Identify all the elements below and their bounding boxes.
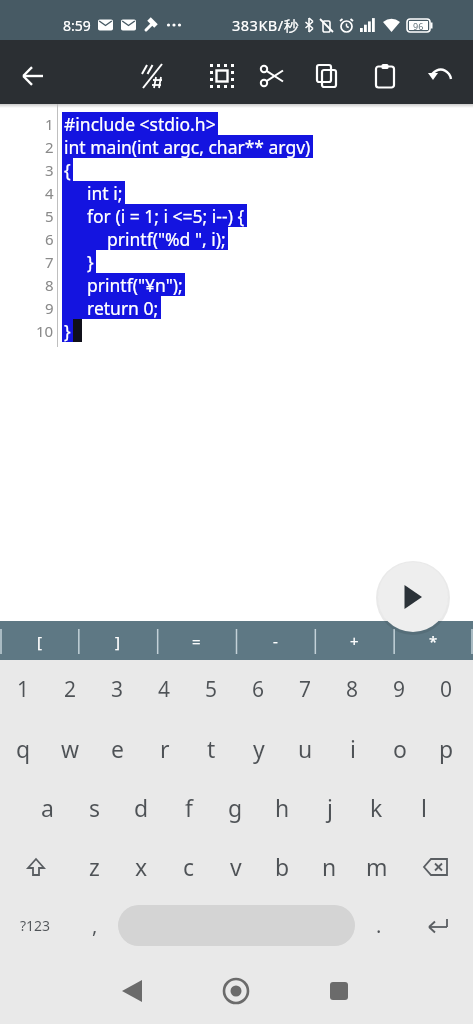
staticText: v [230,851,242,882]
staticText: ] [115,631,120,651]
button[interactable]: k [353,778,400,837]
button[interactable]: - [236,621,315,660]
button[interactable]: v [212,837,259,896]
button[interactable]: o [376,719,423,778]
button[interactable]: b [259,837,306,896]
button[interactable]: r [141,719,188,778]
staticText: 5 [45,206,54,226]
button[interactable]: ] [78,621,157,660]
button[interactable]: 4 [141,660,188,719]
staticText: return 0; [87,296,159,319]
staticText: 383KB/秒 [232,15,299,35]
staticText: 7 [299,675,312,704]
staticText: 8 [346,675,359,704]
staticText: w [61,733,80,764]
staticText: p [439,733,454,764]
button[interactable]: a [24,778,71,837]
button[interactable]: 9 [376,660,423,719]
button[interactable]: * [394,621,473,660]
button[interactable]: + [315,621,394,660]
button[interactable] [9,52,57,100]
button[interactable] [198,52,246,100]
button[interactable]: i [329,719,376,778]
button[interactable]: n [306,837,353,896]
button[interactable]: 6 [235,660,282,719]
staticText: t [207,733,216,764]
staticText: 0 [440,675,453,704]
button[interactable] [212,967,260,1015]
staticText: n [322,851,337,882]
staticText: - [273,631,278,651]
staticText: 5 [205,675,218,704]
staticText: 8 [45,275,54,295]
button[interactable] [108,967,156,1015]
staticText: } [64,319,71,342]
staticText: m [366,851,388,882]
button[interactable]: x [118,837,165,896]
button[interactable]: u [282,719,329,778]
button[interactable]: m [353,837,400,896]
staticText: [ [37,631,42,651]
button[interactable]: = [157,621,236,660]
button[interactable]: l [400,778,447,837]
button[interactable]: 5 [188,660,235,719]
button[interactable]: f [165,778,212,837]
staticText: int i; [87,181,123,204]
staticText: 9 [393,675,406,704]
staticText: g [228,792,243,823]
button[interactable]: 3 [94,660,141,719]
button[interactable] [303,52,351,100]
button[interactable]: d [118,778,165,837]
button[interactable] [378,562,448,632]
staticText: d [134,792,149,823]
button[interactable] [402,896,473,955]
button[interactable]: p [423,719,470,778]
button[interactable]: q [0,719,47,778]
staticText: 10 [36,321,54,341]
button[interactable]: w [47,719,94,778]
staticText: 3 [111,675,124,704]
button[interactable]: 7 [282,660,329,719]
staticText: int main(int argc, char** argv) [64,135,311,158]
staticText: 96 [413,20,424,32]
staticText: ?123 [20,916,51,935]
button[interactable] [248,52,296,100]
button[interactable]: c [165,837,212,896]
staticText: , [92,912,98,939]
staticText: b [275,851,290,882]
staticText: 2 [45,137,54,157]
staticText: 1 [45,114,54,134]
staticText: q [16,733,31,764]
staticText: j [327,792,333,823]
staticText: for (i = 1; i <=5; i--) { [87,204,245,227]
button[interactable]: h [259,778,306,837]
staticText: 4 [45,183,54,203]
button[interactable]: y [235,719,282,778]
button[interactable]: [ [0,621,78,660]
staticText: f [185,792,193,823]
button[interactable] [0,837,71,896]
button[interactable]: , [71,896,118,955]
button[interactable]: 0 [423,660,470,719]
button[interactable]: . [355,896,402,955]
staticText: 8:59 [63,16,91,35]
button[interactable]: 8 [329,660,376,719]
button[interactable]: s [71,778,118,837]
button[interactable] [128,52,176,100]
staticText: { [64,158,71,181]
button[interactable] [118,905,355,946]
staticText: 6 [252,675,265,704]
button[interactable] [315,967,363,1015]
button[interactable] [416,52,464,100]
button[interactable]: 1 [0,660,47,719]
button[interactable]: t [188,719,235,778]
button[interactable]: e [94,719,141,778]
button[interactable] [400,837,471,896]
button[interactable]: g [212,778,259,837]
button[interactable] [361,52,409,100]
button[interactable]: 2 [47,660,94,719]
button[interactable]: ?123 [0,896,71,955]
staticText: r [160,733,170,764]
button[interactable]: z [71,837,118,896]
button[interactable]: j [306,778,353,837]
